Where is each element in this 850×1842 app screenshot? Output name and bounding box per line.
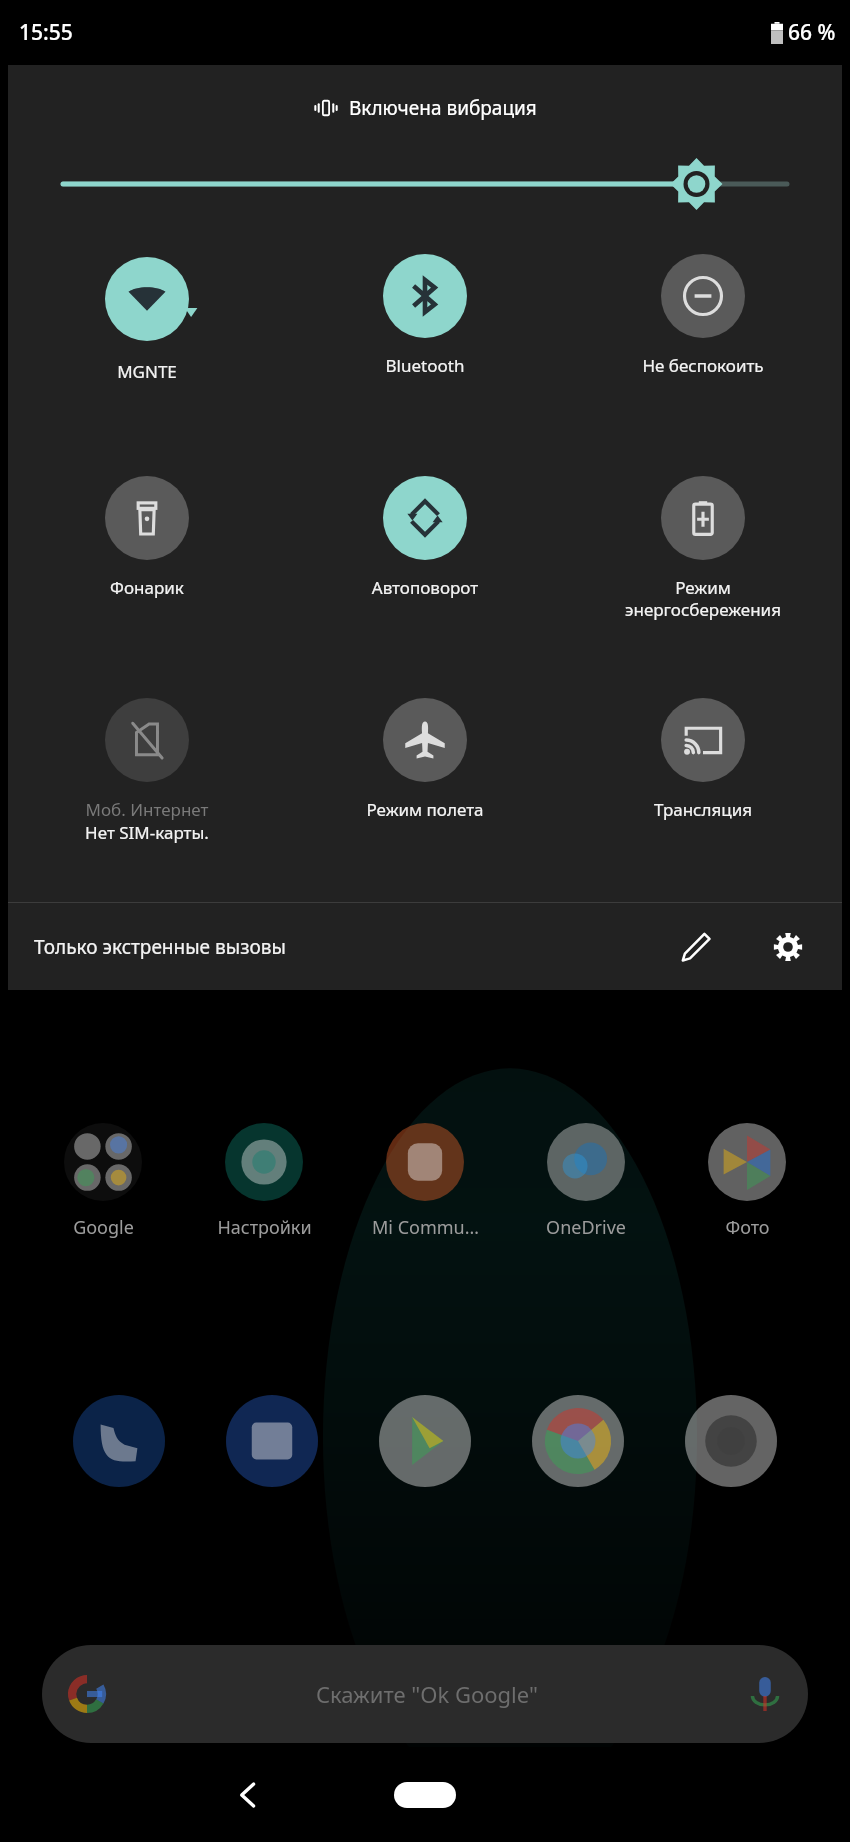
- staticText: Mi Commu…: [372, 1215, 479, 1240]
- button[interactable]: App: [379, 1395, 471, 1487]
- button[interactable]: Фонарик: [8, 458, 286, 680]
- button[interactable]: Settings: [760, 919, 816, 975]
- staticText: Режим полета: [290, 798, 560, 821]
- staticText: Настройки: [217, 1215, 312, 1240]
- staticText: Фото: [725, 1215, 770, 1240]
- button[interactable]: OneDrive: [516, 1123, 656, 1240]
- button[interactable]: Трансляция: [564, 680, 842, 902]
- staticText: Только экстренные вызовы: [34, 934, 286, 960]
- staticText: Нет SIM-карты.: [8, 821, 286, 844]
- staticText: Трансляция: [568, 798, 838, 821]
- button[interactable]: Bluetooth: [286, 236, 564, 458]
- button[interactable]: App: [685, 1395, 777, 1487]
- button[interactable]: Скажите "Ok Google": [42, 1645, 808, 1743]
- button[interactable]: Edit: [668, 919, 724, 975]
- staticText: MGNTE: [12, 360, 282, 383]
- button[interactable]: Настройки: [194, 1123, 334, 1240]
- button[interactable]: App: [532, 1395, 624, 1487]
- button[interactable]: Не беспокоить: [564, 236, 842, 458]
- staticText: Включена вибрация: [349, 95, 537, 121]
- button[interactable]: Фото: [677, 1123, 817, 1240]
- button[interactable]: Режим полета: [286, 680, 564, 902]
- staticText: 15:55: [19, 18, 73, 47]
- staticText: Моб. Интернет: [12, 798, 282, 821]
- button[interactable]: Google: [33, 1123, 173, 1240]
- staticText: Bluetooth: [290, 354, 560, 377]
- button[interactable]: Моб. Интернет: [8, 680, 286, 902]
- button[interactable]: Mi Commu…: [355, 1123, 495, 1240]
- staticText: 66 %: [788, 18, 836, 47]
- button[interactable]: Режим энергосбережения: [564, 458, 842, 680]
- staticText: Фонарик: [12, 576, 282, 599]
- staticText: OneDrive: [546, 1215, 626, 1240]
- button[interactable]: Home: [394, 1782, 456, 1808]
- button[interactable]: MGNTE: [8, 236, 286, 458]
- staticText: Не беспокоить: [568, 354, 838, 377]
- staticText: Скажите "Ok Google": [316, 1679, 538, 1709]
- button[interactable]: App: [73, 1395, 165, 1487]
- button[interactable]: Back: [214, 1760, 284, 1830]
- staticText: Google: [73, 1215, 134, 1240]
- button[interactable]: App: [226, 1395, 318, 1487]
- button[interactable]: Автоповорот: [286, 458, 564, 680]
- staticText: Автоповорот: [290, 576, 560, 599]
- staticText: Режим энергосбережения: [568, 576, 838, 621]
